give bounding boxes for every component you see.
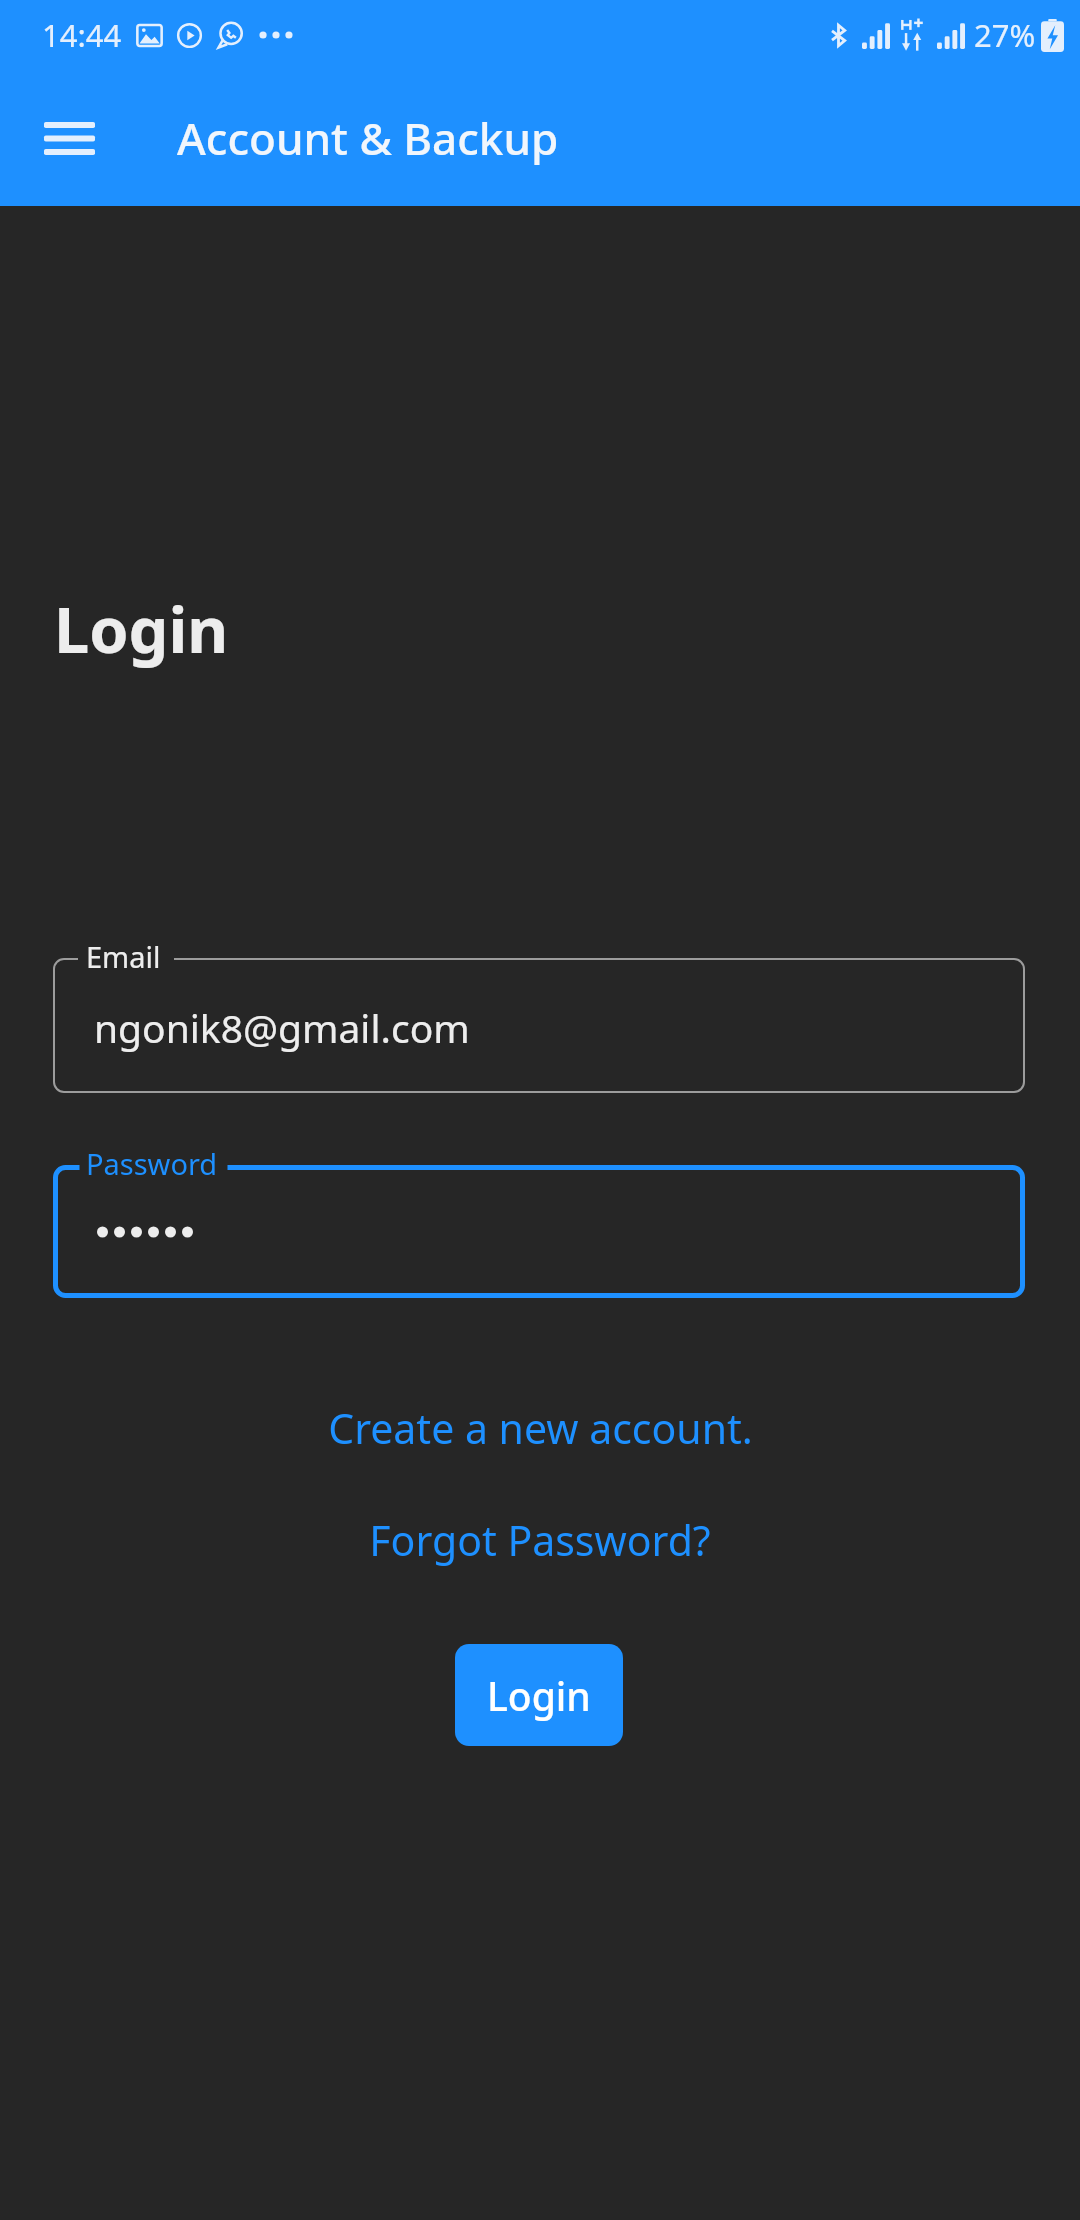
button[interactable]: Open navigation menu [22,91,116,185]
button[interactable]: Forgot Password? [0,1496,1080,1584]
staticText: Email [86,937,161,976]
staticText: Forgot Password? [369,1512,711,1568]
button[interactable]: Create a new account. [0,1384,1080,1472]
button[interactable]: Password [53,1165,1025,1298]
button[interactable]: Email [53,958,1025,1093]
staticText: Create a new account. [328,1400,753,1456]
staticText: Login [54,586,229,672]
staticText: 27% [974,14,1036,56]
staticText: Account & Backup [177,108,559,168]
staticText: Login [487,1669,591,1722]
staticText: ngonik8@gmail.com [94,1001,470,1054]
staticText: Password [86,1144,218,1183]
button[interactable]: Login [455,1644,623,1746]
staticText: 14:44 [42,14,122,56]
